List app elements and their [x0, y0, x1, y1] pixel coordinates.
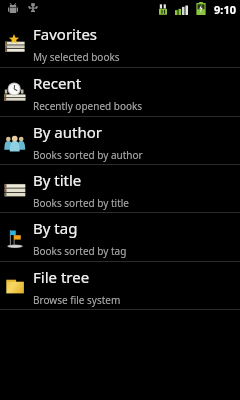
- staticText: Recently opened books: [33, 99, 143, 113]
- staticText: Books sorted by author: [33, 148, 143, 162]
- button[interactable]: Recent: [0, 68, 240, 116]
- staticText: By author: [33, 122, 102, 142]
- staticText: Books sorted by tag: [33, 244, 127, 258]
- staticText: File tree: [33, 267, 90, 287]
- button[interactable]: Favorites: [0, 19, 240, 67]
- button[interactable]: By title: [0, 165, 240, 212]
- button[interactable]: By tag: [0, 213, 240, 261]
- staticText: By tag: [33, 218, 78, 238]
- staticText: Favorites: [33, 24, 98, 44]
- staticText: By title: [33, 170, 82, 190]
- staticText: 9:10: [214, 2, 236, 17]
- staticText: Browse file system: [33, 293, 121, 307]
- staticText: My selected books: [33, 50, 120, 64]
- staticText: Books sorted by title: [33, 196, 129, 210]
- button[interactable]: By author: [0, 117, 240, 164]
- staticText: Recent: [33, 73, 82, 93]
- button[interactable]: File tree: [0, 262, 240, 309]
